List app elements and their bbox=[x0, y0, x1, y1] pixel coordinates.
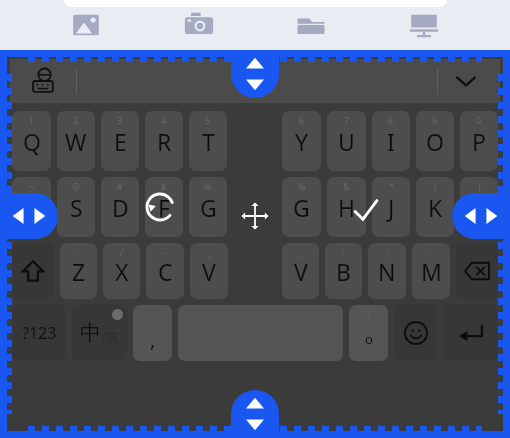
button[interactable]: 6 bbox=[282, 111, 321, 171]
button[interactable]: 2 bbox=[57, 111, 95, 171]
staticText: ` bbox=[430, 246, 433, 258]
staticText: 中 bbox=[80, 320, 101, 346]
button[interactable]: / bbox=[103, 243, 140, 299]
staticText: V bbox=[202, 256, 216, 287]
staticText: _ bbox=[207, 246, 211, 258]
staticText: 4 bbox=[161, 114, 167, 126]
staticText: - bbox=[164, 246, 167, 258]
staticText: Z bbox=[72, 256, 86, 287]
button[interactable]: # bbox=[101, 177, 139, 237]
button[interactable]: 9 bbox=[416, 111, 454, 171]
staticText: ~ bbox=[29, 180, 35, 192]
staticText: _ bbox=[299, 246, 303, 258]
staticText: # bbox=[117, 180, 123, 192]
button[interactable]: Hide keyboard bbox=[446, 61, 486, 101]
staticText: J bbox=[388, 192, 395, 223]
button[interactable]: 中 bbox=[72, 305, 127, 361]
button[interactable]: _ bbox=[190, 243, 228, 299]
button[interactable] bbox=[394, 305, 437, 361]
button[interactable]: & bbox=[327, 177, 366, 237]
button[interactable]: Resize left bbox=[0, 193, 58, 239]
button[interactable]: * bbox=[372, 177, 410, 237]
staticText: R bbox=[157, 126, 172, 157]
staticText: ?123 bbox=[22, 322, 57, 344]
button[interactable]: % bbox=[282, 177, 321, 237]
staticText: F bbox=[158, 192, 170, 223]
button[interactable] bbox=[443, 305, 498, 361]
button[interactable]: ) bbox=[460, 177, 498, 237]
staticText: T bbox=[202, 126, 215, 157]
button[interactable]: Gallery bbox=[59, 3, 113, 47]
button[interactable]: , bbox=[133, 305, 172, 361]
staticText: ; bbox=[386, 246, 389, 258]
button[interactable]: 5 bbox=[189, 111, 227, 171]
button[interactable]: Screen bbox=[397, 3, 451, 47]
button[interactable]: 4 bbox=[145, 111, 183, 171]
staticText: D bbox=[112, 192, 129, 223]
staticText: 0 bbox=[476, 114, 482, 126]
button[interactable] bbox=[12, 243, 54, 299]
button[interactable]: 1 bbox=[12, 111, 51, 171]
staticText: N bbox=[378, 256, 396, 287]
staticText: ( bbox=[434, 180, 437, 192]
staticText: I bbox=[387, 126, 395, 157]
staticText: G bbox=[200, 192, 217, 223]
button[interactable]: 3 bbox=[101, 111, 139, 171]
staticText: O bbox=[426, 126, 444, 157]
button[interactable]: % bbox=[189, 177, 227, 237]
staticText: 6 bbox=[299, 114, 305, 126]
staticText: ' bbox=[77, 246, 80, 258]
staticText: : bbox=[342, 246, 345, 258]
staticText: V bbox=[294, 256, 308, 287]
button[interactable]: : bbox=[325, 243, 362, 299]
staticText: 2 bbox=[73, 114, 79, 126]
button[interactable]: ~ bbox=[12, 177, 51, 237]
button[interactable]: Camera bbox=[172, 3, 226, 47]
staticText: L bbox=[473, 192, 486, 223]
button[interactable] bbox=[456, 243, 498, 299]
button[interactable]: Resize right bbox=[452, 193, 510, 239]
staticText: W bbox=[65, 126, 87, 157]
staticText: U bbox=[338, 126, 355, 157]
button[interactable]: ? bbox=[349, 305, 388, 361]
staticText: * bbox=[389, 180, 394, 192]
staticText: % bbox=[298, 180, 306, 192]
staticText: E bbox=[114, 126, 127, 157]
staticText: H bbox=[338, 192, 356, 223]
button[interactable]: Language bbox=[24, 62, 62, 100]
button[interactable]: 0 bbox=[460, 111, 498, 171]
staticText: o bbox=[365, 330, 373, 348]
button[interactable]: Resize down bbox=[231, 390, 279, 438]
button[interactable]: 7 bbox=[327, 111, 366, 171]
staticText: & bbox=[343, 180, 350, 192]
button[interactable]: Files bbox=[284, 3, 338, 47]
staticText: X bbox=[115, 256, 129, 287]
button[interactable]: ; bbox=[368, 243, 406, 299]
button[interactable]: ' bbox=[60, 243, 97, 299]
button[interactable]: @ bbox=[57, 177, 95, 237]
staticText: 9 bbox=[432, 114, 438, 126]
button[interactable]: ` bbox=[412, 243, 450, 299]
staticText: ? bbox=[367, 308, 371, 320]
staticText: S bbox=[70, 192, 83, 223]
button[interactable]: ?123 bbox=[12, 305, 66, 361]
staticText: % bbox=[204, 180, 212, 192]
staticText: 3 bbox=[117, 114, 123, 126]
button[interactable]: _ bbox=[282, 243, 319, 299]
button[interactable]: 8 bbox=[372, 111, 410, 171]
staticText: ) bbox=[478, 180, 481, 192]
button[interactable]: $ bbox=[145, 177, 183, 237]
staticText: /英 bbox=[101, 328, 119, 346]
staticText: 8 bbox=[388, 114, 394, 126]
staticText: , bbox=[150, 326, 156, 353]
staticText: $ bbox=[161, 180, 167, 192]
button[interactable]: ( bbox=[416, 177, 454, 237]
button[interactable]: Move keyboard bbox=[235, 196, 275, 236]
button[interactable]: Resize up bbox=[231, 50, 279, 98]
staticText: G bbox=[293, 192, 310, 223]
staticText: 7 bbox=[344, 114, 350, 126]
button[interactable]: - bbox=[146, 243, 184, 299]
staticText: 1 bbox=[29, 114, 35, 126]
staticText: 5 bbox=[205, 114, 211, 126]
